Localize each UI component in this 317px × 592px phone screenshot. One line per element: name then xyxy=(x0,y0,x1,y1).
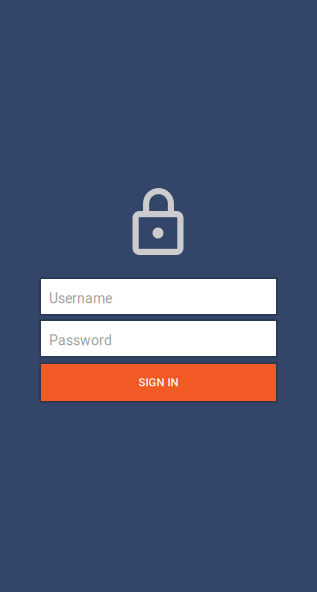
staticText: Password xyxy=(49,332,112,349)
staticText: SIGN IN xyxy=(138,376,178,389)
button[interactable]: Username xyxy=(41,279,276,314)
button[interactable]: SIGN IN xyxy=(41,364,276,401)
button[interactable]: Password xyxy=(41,321,276,356)
staticText: Username xyxy=(49,290,112,307)
